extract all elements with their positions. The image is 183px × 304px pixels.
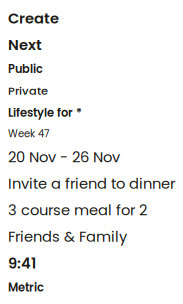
staticText: 20 Nov - 26 Nov: [8, 147, 120, 167]
staticText: Create: [8, 8, 59, 28]
staticText: 9:41: [8, 253, 36, 273]
staticText: Public: [8, 61, 43, 77]
staticText: Week 47: [8, 127, 49, 141]
staticText: Friends & Family: [8, 226, 127, 247]
staticText: Lifestyle for *: [8, 105, 82, 121]
staticText: Next: [8, 34, 42, 55]
staticText: Metric: [8, 279, 44, 296]
staticText: Invite a friend to dinner: [8, 173, 175, 194]
staticText: 3 course meal for 2: [8, 200, 147, 220]
staticText: Private: [8, 83, 48, 99]
